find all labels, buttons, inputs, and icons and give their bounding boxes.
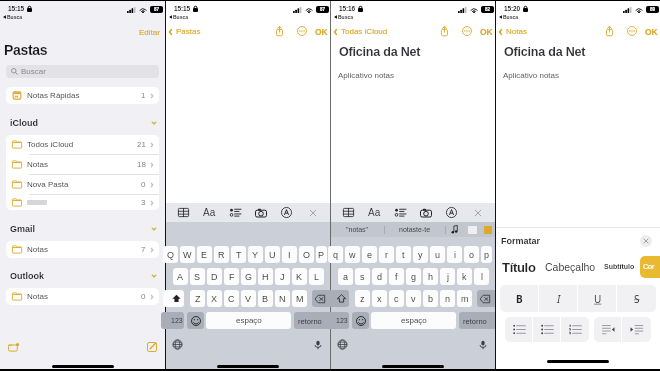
button[interactable]: j [440,268,455,285]
button[interactable]: Language [337,339,348,350]
button[interactable]: w [345,246,360,263]
button[interactable]: T [231,246,246,263]
button[interactable]: Z [190,290,205,307]
button[interactable]: B [500,285,539,312]
button[interactable]: i [447,246,462,263]
button[interactable]: v [406,290,421,307]
button[interactable]: Markup [443,204,460,221]
button[interactable]: Pastas [167,25,205,38]
button[interactable]: l [474,268,489,285]
button[interactable]: Emoji [187,312,204,329]
button[interactable]: s [355,268,370,285]
button[interactable]: Y [248,246,263,263]
button[interactable]: Camera [417,204,434,221]
button[interactable]: n [440,290,455,307]
button[interactable]: Emoji [352,312,369,329]
button[interactable]: e [362,246,377,263]
button[interactable]: Share [602,24,616,38]
button[interactable]: Notas [497,25,531,38]
button[interactable]: Checklist [227,204,244,221]
button[interactable]: V [241,290,256,307]
button[interactable]: R [214,246,229,263]
button[interactable]: I [282,246,297,263]
button[interactable]: G [241,268,256,285]
button[interactable]: Format [366,204,383,221]
button[interactable]: O [299,246,314,263]
button[interactable] [464,222,481,237]
button[interactable]: Notas [6,155,159,174]
button[interactable]: Indent 0 [594,317,622,342]
button[interactable]: Share [437,24,451,38]
button[interactable]: M [292,290,307,307]
button[interactable]: E [197,246,212,263]
button[interactable]: g [406,268,421,285]
button[interactable]: I [539,285,578,312]
button[interactable]: Q [163,246,178,263]
button[interactable]: Todas iCloud [332,25,392,38]
button[interactable]: More [625,24,639,38]
button[interactable]: S [190,268,205,285]
button[interactable]: Format [201,204,218,221]
button[interactable]: retorno [294,312,336,329]
button[interactable]: Notas [6,288,159,305]
button[interactable]: More [460,24,474,38]
button[interactable]: Close [304,204,321,221]
button[interactable]: Dictate [313,340,323,350]
button[interactable]: u [430,246,445,263]
button[interactable]: Table [340,204,357,221]
button[interactable]: Notas [6,241,159,258]
button[interactable]: 3 [6,195,159,210]
button[interactable]: New folder [5,339,21,355]
button[interactable]: List 0 [505,317,533,342]
button[interactable]: More [295,24,309,38]
button[interactable]: Camera [252,204,269,221]
button[interactable]: OK [313,25,330,38]
button[interactable]: o [464,246,479,263]
button[interactable]: d [372,268,387,285]
button[interactable]: Cor [640,256,660,278]
button[interactable]: q [328,246,343,263]
button[interactable]: X [207,290,222,307]
button[interactable]: Nova Pasta [6,175,159,194]
button[interactable]: c [389,290,404,307]
button[interactable]: L [309,268,324,285]
button[interactable]: "notas" [331,222,384,237]
button[interactable]: Checklist [392,204,409,221]
button[interactable]: f [389,268,404,285]
button[interactable]: New note [144,339,160,355]
button[interactable]: Backspace [477,290,498,307]
button[interactable]: z [355,290,370,307]
button[interactable]: Título [496,256,541,279]
button[interactable]: D [207,268,222,285]
button[interactable]: Dictate [478,340,488,350]
button[interactable]: C [224,290,239,307]
button[interactable]: F [224,268,239,285]
button[interactable]: Share [272,24,286,38]
button[interactable]: m [457,290,472,307]
button[interactable]: P [316,246,327,263]
button[interactable]: Collapse [149,118,159,128]
button[interactable]: J [275,268,290,285]
button[interactable]: x [372,290,387,307]
button[interactable]: r [379,246,394,263]
button[interactable]: Close [640,235,652,247]
button[interactable]: H [258,268,273,285]
button[interactable]: S [617,285,656,312]
button[interactable]: t [396,246,411,263]
button[interactable]: Shift [328,290,349,307]
button[interactable]: b [423,290,438,307]
button[interactable]: List 1 [533,317,561,342]
button[interactable]: Editar [136,26,163,39]
button[interactable]: OK [478,25,495,38]
button[interactable]: Notas Rápidas [6,87,159,104]
button[interactable]: p [481,246,492,263]
button[interactable]: k [457,268,472,285]
button[interactable] [481,222,495,237]
button[interactable]: B [258,290,273,307]
button[interactable]: Buscar [6,65,159,78]
button[interactable]: Collapse [149,271,159,281]
button[interactable]: notaste-te [385,222,445,237]
button[interactable]: h [423,268,438,285]
button[interactable]: Collapse [149,224,159,234]
button[interactable]: K [292,268,307,285]
